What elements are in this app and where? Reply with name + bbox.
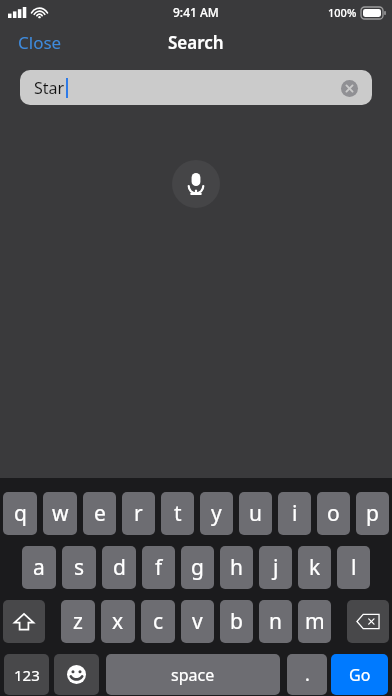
staticText: g <box>191 553 204 582</box>
staticText: r <box>134 499 143 528</box>
staticText: t <box>174 499 182 528</box>
staticText: u <box>249 499 262 528</box>
staticText: a <box>33 553 45 582</box>
staticText: s <box>74 553 85 582</box>
staticText: Search <box>168 31 224 54</box>
button[interactable]: z <box>61 600 95 643</box>
button[interactable]: g <box>181 546 214 589</box>
staticText: h <box>230 553 243 582</box>
staticText: d <box>113 553 126 582</box>
button[interactable]: f <box>142 546 175 589</box>
staticText: y <box>211 499 222 528</box>
button[interactable]: k <box>298 546 331 589</box>
button[interactable]: j <box>259 546 292 589</box>
staticText: Star <box>34 77 65 99</box>
button[interactable]: s <box>62 546 96 589</box>
button[interactable]: Voice search <box>172 160 220 208</box>
staticText: 9:41 AM <box>173 4 219 20</box>
staticText: m <box>305 607 325 636</box>
button[interactable]: v <box>181 600 214 643</box>
staticText: w <box>52 499 69 528</box>
button[interactable]: 123 <box>4 654 49 695</box>
staticText: Go <box>349 664 371 686</box>
button[interactable]: Backspace <box>347 600 389 643</box>
staticText: o <box>327 499 340 528</box>
staticText: v <box>192 607 203 636</box>
button[interactable]: Emoji keyboard <box>54 654 99 695</box>
button[interactable]: y <box>200 492 233 535</box>
button[interactable]: p <box>356 492 389 535</box>
button[interactable]: Star <box>20 70 372 105</box>
button[interactable]: u <box>239 492 272 535</box>
staticText: k <box>309 553 321 582</box>
button[interactable]: n <box>259 600 292 643</box>
staticText: l <box>351 553 357 582</box>
staticText: Close <box>18 31 62 53</box>
button[interactable]: a <box>22 546 56 589</box>
staticText: b <box>230 607 243 636</box>
staticText: i <box>292 499 298 528</box>
staticText: z <box>73 607 83 636</box>
button[interactable]: space <box>106 654 280 695</box>
staticText: 100% <box>328 5 357 20</box>
button[interactable]: r <box>122 492 155 535</box>
staticText: 123 <box>14 665 40 685</box>
staticText: . <box>305 662 310 687</box>
button[interactable]: d <box>102 546 136 589</box>
button[interactable]: m <box>298 600 331 643</box>
button[interactable]: x <box>101 600 135 643</box>
button[interactable]: e <box>83 492 116 535</box>
staticText: n <box>269 607 282 636</box>
staticText: c <box>153 607 164 636</box>
button[interactable]: t <box>161 492 194 535</box>
button[interactable]: Shift <box>3 600 45 643</box>
staticText: space <box>171 664 215 686</box>
button[interactable]: Clear text <box>336 75 362 101</box>
staticText: j <box>273 553 279 582</box>
staticText: q <box>14 499 27 528</box>
staticText: e <box>94 499 106 528</box>
staticText: x <box>112 607 124 636</box>
button[interactable]: Close <box>0 24 80 60</box>
button[interactable]: w <box>43 492 77 535</box>
button[interactable]: h <box>220 546 253 589</box>
button[interactable]: b <box>220 600 253 643</box>
button[interactable]: . <box>287 654 327 695</box>
staticText: f <box>155 553 163 582</box>
button[interactable]: i <box>278 492 311 535</box>
button[interactable]: l <box>337 546 370 589</box>
button[interactable]: c <box>141 600 175 643</box>
button[interactable]: o <box>317 492 350 535</box>
button[interactable]: q <box>3 492 37 535</box>
staticText: p <box>366 499 379 528</box>
button[interactable]: Go <box>331 654 388 695</box>
